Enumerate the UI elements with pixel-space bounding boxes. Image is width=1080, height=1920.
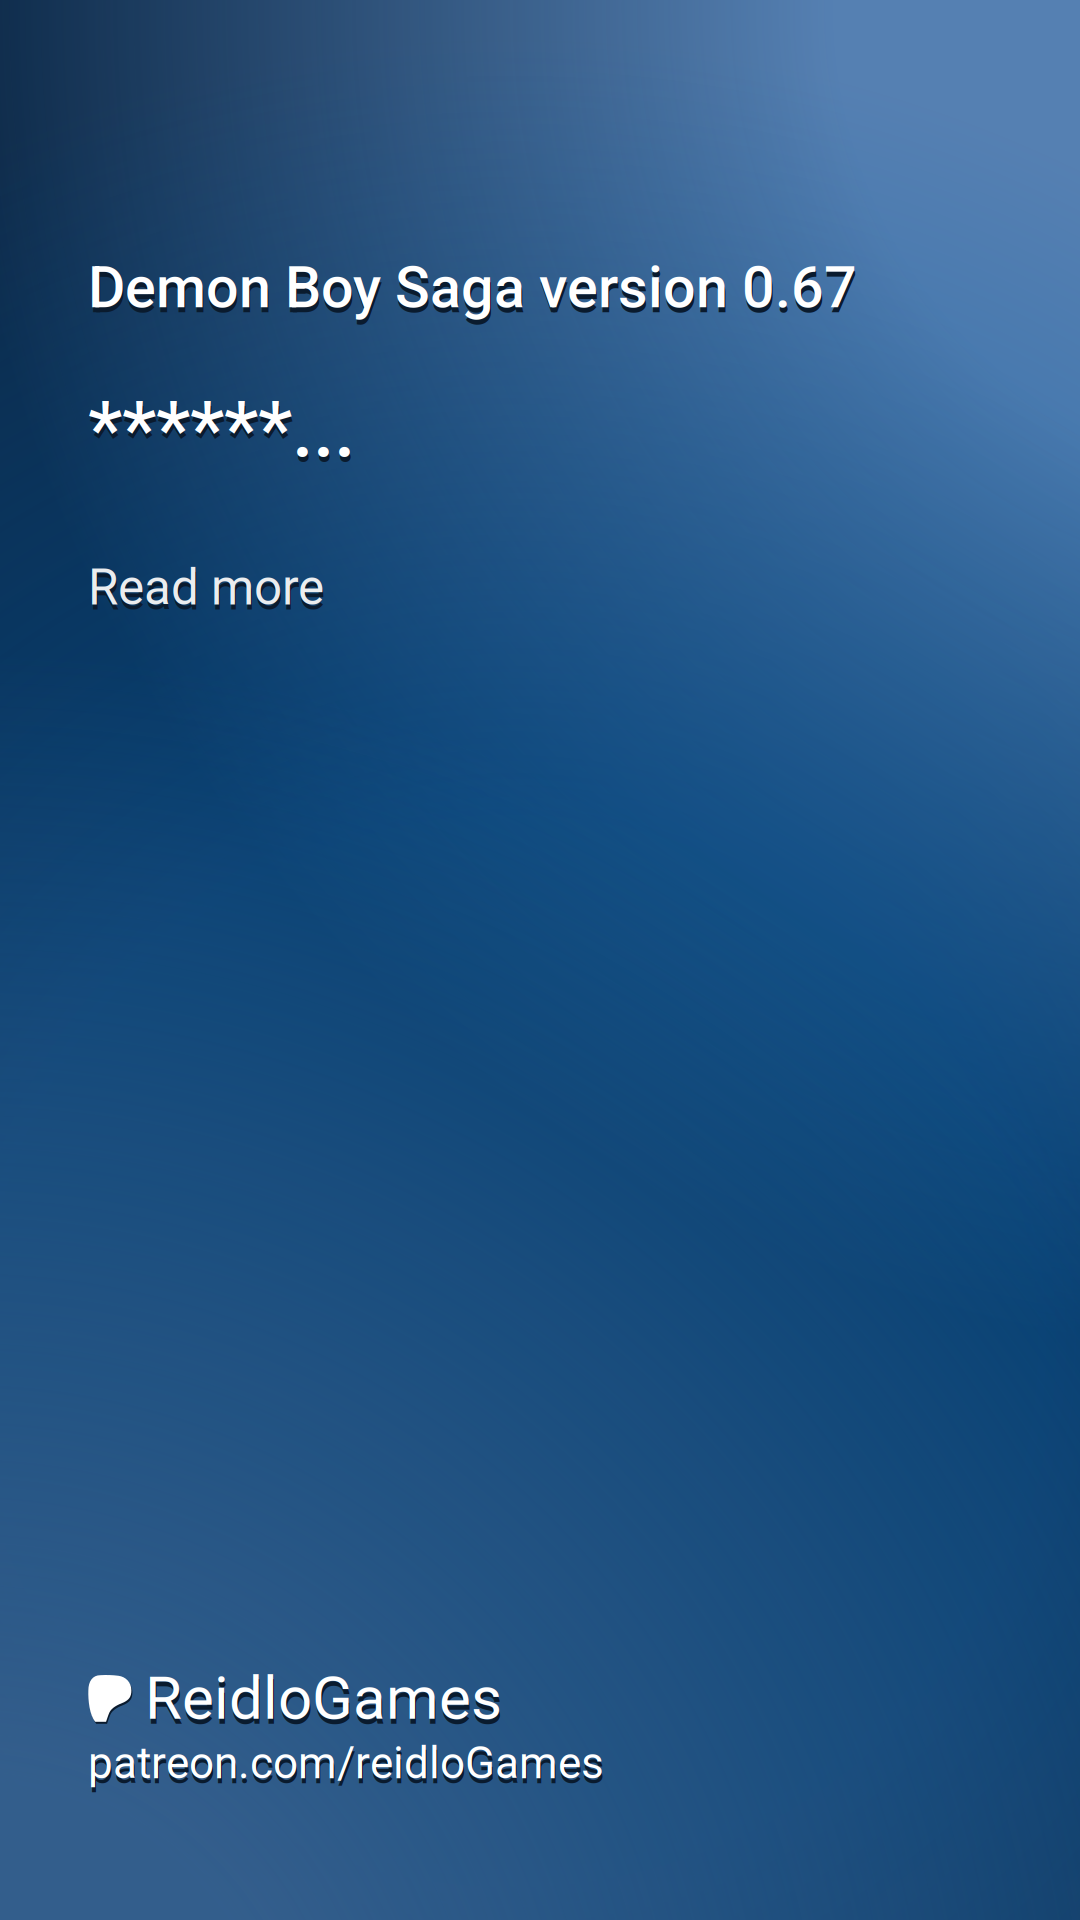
staticText: patreon.com/reidloGames: [88, 1737, 604, 1789]
staticText: ReidloGames: [145, 1663, 502, 1733]
staticText: Read more: [88, 559, 324, 617]
staticText: ******...: [88, 385, 355, 476]
button[interactable]: ReidloGames: [88, 1663, 604, 1789]
staticText: Demon Boy Saga version 0.67: [89, 259, 858, 326]
staticText: Read more: [89, 564, 325, 622]
button[interactable]: Read more: [88, 551, 324, 625]
staticText: patreon.com/reidloGames: [89, 1742, 605, 1794]
staticText: ReidloGames: [146, 1668, 503, 1738]
staticText: ******...: [89, 390, 356, 481]
staticText: Demon Boy Saga version 0.67: [88, 254, 857, 321]
